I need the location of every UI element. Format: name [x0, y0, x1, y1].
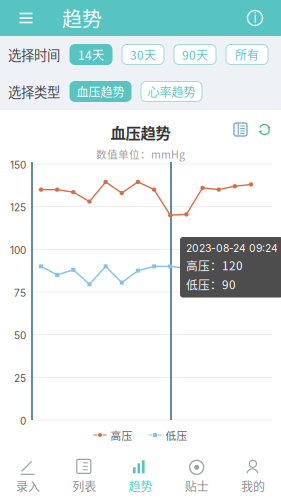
staticText: 75	[14, 287, 26, 299]
staticText: 0	[20, 415, 26, 427]
staticText: 2023-08-24 09:24	[186, 242, 278, 255]
staticText: 低压：90	[186, 276, 236, 293]
staticText: 50	[14, 330, 26, 342]
button[interactable]: 录入	[0, 454, 56, 500]
staticText: 14天	[78, 46, 104, 63]
button[interactable]: Data list	[233, 122, 248, 137]
button[interactable]: Menu	[8, 0, 44, 36]
staticText: 125	[10, 202, 26, 214]
staticText: 100	[10, 244, 26, 256]
staticText: 贴士	[185, 477, 209, 495]
staticText: 心率趋势	[147, 83, 195, 100]
staticText: 150	[10, 159, 26, 171]
staticText: 所有	[235, 46, 259, 63]
staticText: 30天	[130, 46, 156, 63]
staticText: 我的	[241, 477, 265, 495]
staticText: 选择时间	[8, 45, 60, 64]
button[interactable]: 心率趋势	[141, 81, 202, 101]
staticText: 录入	[16, 477, 40, 495]
button[interactable]: 血压趋势	[70, 81, 131, 101]
staticText: 血压趋势	[76, 83, 124, 100]
staticText: 列表	[72, 477, 96, 495]
button[interactable]: 所有	[226, 44, 268, 64]
staticText: 高压：120	[186, 257, 243, 274]
staticText: 趋势	[62, 3, 102, 32]
staticText: 血压趋势	[110, 121, 170, 143]
button[interactable]: 趋势	[112, 454, 169, 500]
staticText: 25	[14, 372, 26, 384]
staticText: 选择类型	[8, 82, 60, 101]
staticText: 90天	[182, 46, 208, 63]
staticText: 低压	[165, 427, 187, 443]
button[interactable]: 14天	[70, 44, 112, 64]
staticText: 数值单位：mmHg	[96, 146, 185, 162]
button[interactable]: 90天	[174, 44, 216, 64]
button[interactable]: 我的	[225, 454, 281, 500]
button[interactable]: Refresh	[257, 122, 272, 137]
button[interactable]: 30天	[122, 44, 164, 64]
staticText: i	[253, 10, 256, 26]
staticText: 趋势	[128, 477, 152, 495]
button[interactable]: Info	[237, 0, 273, 36]
staticText: 高压	[110, 427, 132, 443]
button[interactable]: 列表	[56, 454, 112, 500]
button[interactable]: 贴士	[169, 454, 225, 500]
